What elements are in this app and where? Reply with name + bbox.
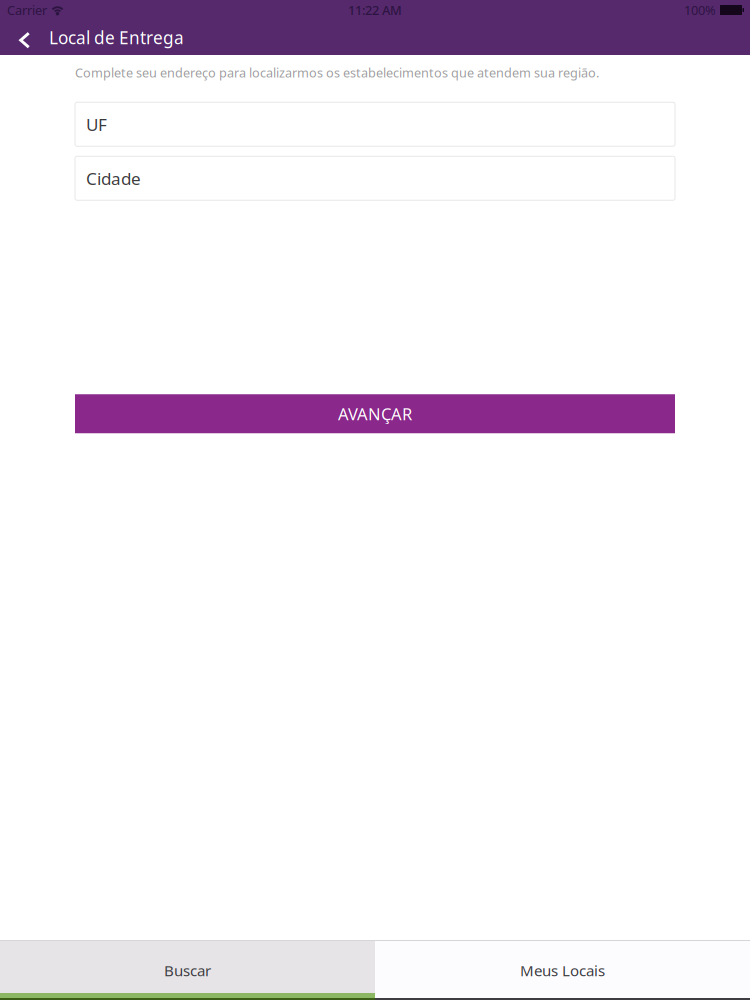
staticText: Complete seu endereço para localizarmos …	[75, 64, 599, 81]
staticText: UF	[86, 113, 107, 136]
button[interactable]: Meus Locais	[375, 941, 750, 1000]
button[interactable]: UF	[75, 102, 675, 146]
staticText: 100%	[684, 1, 716, 19]
button[interactable]: Cidade	[75, 156, 675, 200]
staticText: Meus Locais	[520, 960, 605, 981]
staticText: Cidade	[86, 167, 141, 190]
staticText: Local de Entrega	[49, 26, 184, 49]
button[interactable]: AVANÇAR	[75, 394, 675, 433]
staticText: Carrier	[7, 1, 47, 19]
button[interactable]: Back	[0, 20, 49, 55]
button[interactable]: Buscar	[0, 941, 375, 1000]
staticText: Buscar	[164, 960, 211, 981]
staticText: AVANÇAR	[338, 402, 412, 425]
staticText: 11:22 AM	[348, 1, 402, 19]
